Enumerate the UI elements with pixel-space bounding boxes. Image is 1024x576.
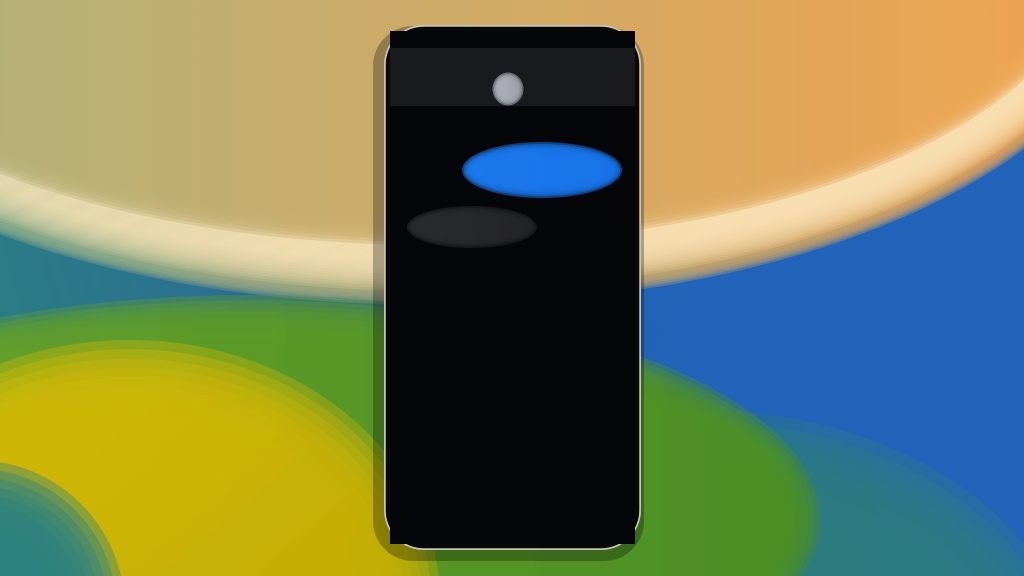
button[interactable]: Heart	[421, 241, 451, 270]
button[interactable]: Thumbs up	[451, 241, 481, 270]
button[interactable]: Thumbs down	[481, 241, 510, 270]
staticText: 01:36	[409, 40, 445, 60]
